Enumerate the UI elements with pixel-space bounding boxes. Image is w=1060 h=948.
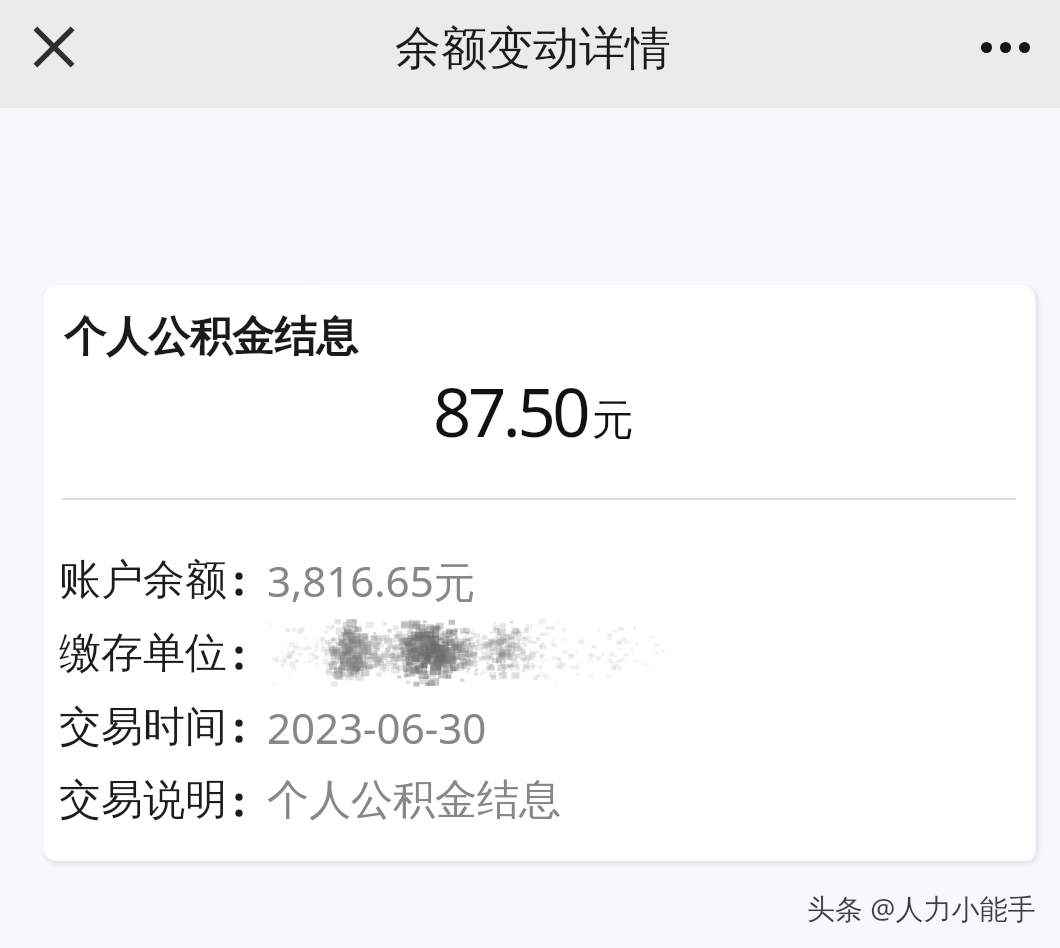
- staticText: 个人公积金结息: [64, 311, 358, 364]
- staticText: 交易说明: [59, 774, 227, 827]
- staticText: 元: [592, 394, 634, 447]
- staticText: 2023-06-30: [267, 699, 487, 756]
- staticText: 个人公积金结息: [267, 774, 561, 827]
- button[interactable]: Close: [18, 11, 90, 83]
- staticText: 交易时间: [59, 701, 227, 754]
- staticText: 头条 @人力小能手: [807, 889, 1036, 927]
- button[interactable]: More options: [955, 12, 1055, 82]
- staticText: 3,816.65元: [267, 552, 476, 609]
- staticText: 余额变动详情: [395, 20, 671, 78]
- staticText: 缴存单位: [59, 627, 227, 680]
- staticText: 账户余额: [59, 554, 227, 607]
- staticText: 87.50: [433, 365, 588, 456]
